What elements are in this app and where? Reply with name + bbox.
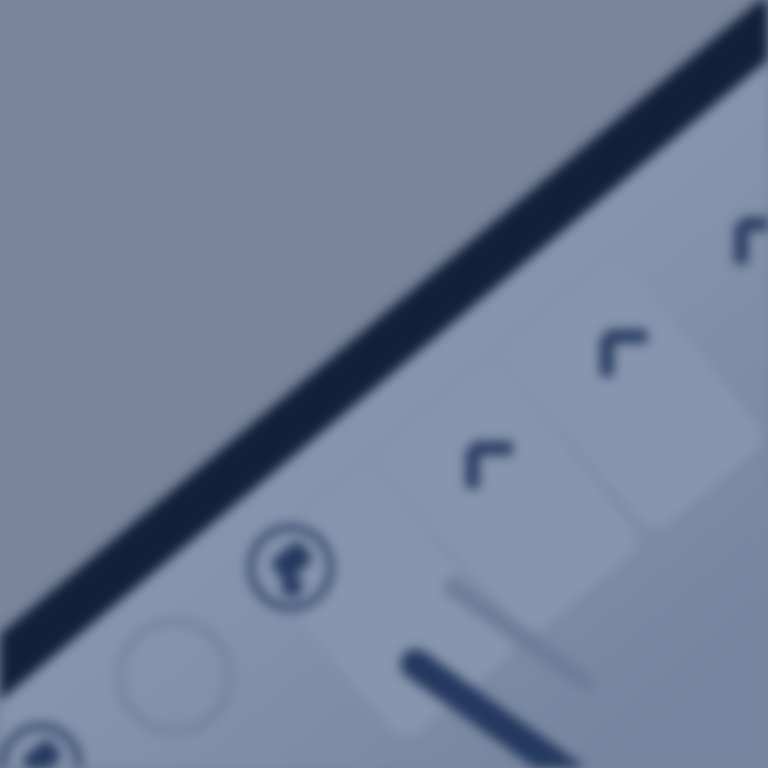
button[interactable]: Activity feed bbox=[0, 0, 768, 768]
